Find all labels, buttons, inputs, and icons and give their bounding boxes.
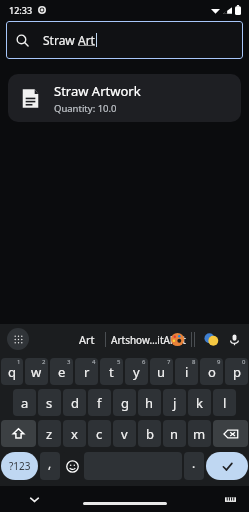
- staticText: m: [193, 425, 206, 443]
- button[interactable]: h: [138, 389, 161, 416]
- button[interactable]: t: [100, 358, 123, 385]
- staticText: b: [146, 425, 154, 443]
- other: Search: [16, 34, 29, 47]
- staticText: h: [145, 394, 154, 412]
- staticText: k: [196, 394, 203, 412]
- staticText: d: [71, 394, 79, 412]
- button[interactable]: e: [50, 358, 73, 385]
- staticText: z: [46, 425, 53, 443]
- button[interactable]: Comma: [40, 452, 60, 480]
- staticText: a: [21, 394, 29, 412]
- staticText: 4: [92, 358, 96, 366]
- staticText: ,: [48, 455, 52, 471]
- staticText: 8: [192, 358, 196, 366]
- staticText: y: [133, 363, 140, 381]
- button[interactable]: m: [188, 420, 211, 447]
- button[interactable]: More options: [7, 328, 29, 350]
- staticText: 7: [167, 358, 171, 366]
- staticText: 3: [67, 358, 71, 366]
- staticText: 6: [142, 358, 146, 366]
- staticText: .: [192, 455, 196, 471]
- button[interactable]: b: [138, 420, 161, 447]
- button[interactable]: g: [113, 389, 136, 416]
- button[interactable]: q: [1, 358, 23, 385]
- staticText: Quantity: 10.0: [54, 102, 117, 115]
- staticText: c: [96, 425, 103, 443]
- button[interactable]: w: [25, 358, 48, 385]
- button[interactable]: d: [63, 389, 86, 416]
- button[interactable]: u: [150, 358, 173, 385]
- button[interactable]: Art: [79, 332, 95, 347]
- staticText: Art: [78, 32, 95, 48]
- staticText: w: [31, 363, 42, 381]
- staticText: l: [223, 394, 227, 412]
- staticText: e: [58, 363, 66, 381]
- staticText: 12:33: [9, 4, 33, 16]
- button[interactable]: x: [63, 420, 86, 447]
- button[interactable]: Enter: [206, 452, 248, 480]
- button[interactable]: l: [213, 389, 236, 416]
- button[interactable]: o: [200, 358, 223, 385]
- button[interactable]: Straw Artwork: [8, 74, 241, 122]
- button[interactable]: s: [38, 389, 61, 416]
- button[interactable]: Backspace: [213, 420, 248, 447]
- button[interactable]: Palette emoji: [170, 332, 185, 347]
- staticText: n: [170, 425, 179, 443]
- button[interactable]: Emoji: [62, 452, 82, 480]
- staticText: 2: [42, 358, 46, 366]
- button[interactable]: Search: [6, 21, 243, 59]
- button[interactable]: Theater masks emoji: [204, 332, 219, 347]
- button[interactable]: Switch keyboard: [223, 492, 237, 506]
- button[interactable]: k: [188, 389, 211, 416]
- button[interactable]: z: [38, 420, 61, 447]
- staticText: Straw Artwork: [54, 82, 141, 100]
- button[interactable]: c: [88, 420, 111, 447]
- button[interactable]: r: [75, 358, 98, 385]
- button[interactable]: Shift: [1, 420, 36, 447]
- staticText: o: [208, 363, 216, 381]
- staticText: x: [71, 425, 78, 443]
- staticText: s: [46, 394, 53, 412]
- button[interactable]: v: [113, 420, 136, 447]
- staticText: t: [109, 363, 114, 381]
- staticText: i: [185, 363, 189, 381]
- button[interactable]: a: [13, 389, 36, 416]
- button[interactable]: p: [225, 358, 248, 385]
- staticText: 0: [242, 358, 246, 366]
- button[interactable]: y: [125, 358, 148, 385]
- button[interactable]: Period: [184, 452, 204, 480]
- staticText: p: [233, 363, 241, 381]
- staticText: 1: [17, 358, 21, 366]
- staticText: ?123: [9, 459, 31, 473]
- staticText: v: [121, 425, 128, 443]
- button[interactable]: ?123: [1, 452, 38, 480]
- button[interactable]: i: [175, 358, 198, 385]
- staticText: f: [97, 394, 102, 412]
- staticText: 9: [217, 358, 221, 366]
- staticText: j: [173, 394, 177, 412]
- staticText: q: [8, 363, 16, 381]
- staticText: g: [121, 394, 129, 412]
- button[interactable]: j: [163, 389, 186, 416]
- button[interactable]: Voice input: [228, 333, 241, 346]
- button[interactable]: Hide keyboard: [26, 491, 42, 507]
- staticText: Art: [79, 332, 95, 347]
- staticText: Straw: [43, 32, 78, 48]
- button[interactable]: Artshow…itAlert: [111, 333, 186, 347]
- staticText: Artshow…itAlert: [111, 333, 186, 347]
- button[interactable]: n: [163, 420, 186, 447]
- button[interactable]: f: [88, 389, 111, 416]
- staticText: r: [84, 363, 90, 381]
- staticText: u: [157, 363, 166, 381]
- staticText: 5: [117, 358, 121, 366]
